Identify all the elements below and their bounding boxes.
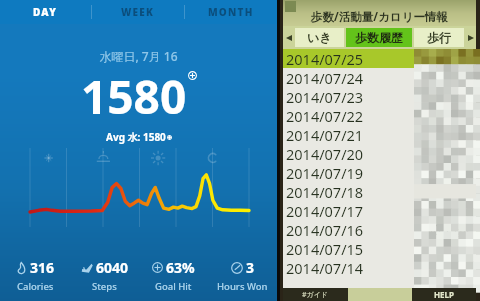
button[interactable]: 2014/07/15 bbox=[283, 239, 476, 258]
button[interactable]: 2014/07/23 bbox=[283, 87, 476, 106]
staticText: WEEK bbox=[121, 5, 155, 19]
staticText: 2014/07/20 bbox=[286, 144, 364, 163]
button[interactable]: 63% bbox=[139, 249, 208, 301]
staticText: 63% bbox=[166, 258, 195, 277]
staticText: 3 bbox=[246, 258, 255, 277]
staticText: #ガイド bbox=[302, 290, 329, 300]
button[interactable]: 2014/07/16 bbox=[283, 220, 476, 239]
staticText: 歩行 bbox=[427, 30, 451, 45]
staticText: いき bbox=[307, 30, 332, 45]
button[interactable]: HELP bbox=[412, 288, 476, 301]
staticText: 2014/07/17 bbox=[286, 201, 364, 220]
button[interactable]: 歩数履歴 bbox=[346, 28, 412, 47]
staticText: 2014/07/18 bbox=[286, 182, 364, 201]
button[interactable]: MONTH bbox=[185, 0, 277, 24]
button[interactable]: 2014/07/24 bbox=[283, 68, 476, 87]
button[interactable]: 2014/07/25 bbox=[283, 49, 476, 68]
staticText: Avg 水: 1580 bbox=[106, 130, 166, 144]
button[interactable]: 2014/07/19 bbox=[283, 163, 476, 182]
button[interactable]: #ガイド bbox=[283, 288, 348, 301]
staticText: 316 bbox=[30, 258, 55, 277]
staticText: Goal Hit bbox=[155, 280, 192, 293]
button[interactable]: Previous bbox=[283, 26, 294, 49]
staticText: 2014/07/14 bbox=[286, 258, 364, 277]
staticText: DAY bbox=[33, 5, 58, 19]
staticText: 2014/07/24 bbox=[286, 68, 364, 87]
button[interactable]: 3 bbox=[208, 249, 277, 301]
staticText: 2014/07/23 bbox=[286, 87, 364, 106]
staticText: 1580 bbox=[81, 65, 187, 128]
button[interactable]: 2014/07/22 bbox=[283, 106, 476, 125]
button[interactable]: 2014/07/18 bbox=[283, 182, 476, 201]
button[interactable]: いき bbox=[295, 28, 344, 47]
staticText: 2014/07/16 bbox=[286, 220, 364, 239]
staticText: 2014/07/21 bbox=[286, 125, 364, 144]
staticText: Hours Won bbox=[217, 280, 268, 293]
staticText: MONTH bbox=[208, 5, 254, 19]
staticText: 2014/07/25 bbox=[286, 49, 364, 68]
button[interactable]: 2014/07/17 bbox=[283, 201, 476, 220]
button[interactable]: DAY bbox=[0, 0, 91, 24]
staticText: 5033歩 bbox=[425, 220, 472, 239]
staticText: 水曜日, 7月 16 bbox=[0, 48, 277, 64]
staticText: 歩数履歴 bbox=[355, 30, 403, 45]
button[interactable]: 6040 bbox=[70, 249, 139, 301]
staticText: Calories bbox=[17, 280, 54, 293]
staticText: 6040 bbox=[96, 258, 129, 277]
button[interactable]: 2014/07/20 bbox=[283, 144, 476, 163]
button[interactable]: 2014/07/21 bbox=[283, 125, 476, 144]
staticText: 歩数/活動量/カロリー情報 bbox=[311, 9, 448, 25]
staticText: Steps bbox=[92, 280, 117, 293]
staticText: 2014/07/15 bbox=[286, 239, 364, 258]
button[interactable]: 316 bbox=[0, 249, 70, 301]
staticText: 2014/07/22 bbox=[286, 106, 364, 125]
button[interactable]: 歩行 bbox=[414, 28, 464, 47]
staticText: HELP bbox=[434, 289, 455, 300]
button[interactable]: WEEK bbox=[92, 0, 184, 24]
staticText: 2014/07/19 bbox=[286, 163, 364, 182]
button[interactable]: 2014/07/14 bbox=[283, 258, 476, 277]
button[interactable]: Next bbox=[465, 26, 476, 49]
